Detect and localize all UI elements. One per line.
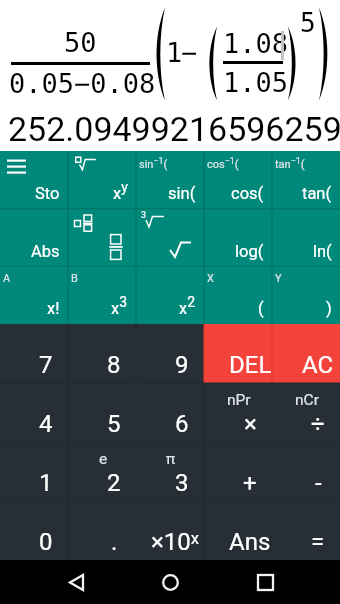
button[interactable]: + <box>204 442 272 501</box>
staticText: 3 <box>141 210 147 221</box>
button[interactable]: ln( <box>272 209 340 267</box>
staticText: + <box>243 469 257 497</box>
staticText: 50 <box>64 27 97 58</box>
staticText: 7 <box>39 351 53 379</box>
button[interactable]: e <box>68 442 136 501</box>
staticText: 5 <box>107 410 121 438</box>
button[interactable]: nPr <box>204 383 272 442</box>
button[interactable]: tan−1( <box>272 151 340 209</box>
button[interactable]: Y <box>272 267 340 324</box>
button[interactable]: ×10x <box>136 501 204 560</box>
staticText: ) <box>326 299 332 318</box>
staticText: 252.09499216596259 <box>8 109 340 149</box>
staticText: 6 <box>175 410 189 438</box>
staticText: ×10x <box>151 528 200 556</box>
button[interactable]: - <box>272 442 340 501</box>
button[interactable]: xy <box>68 151 136 209</box>
staticText: x3 <box>111 294 128 318</box>
button[interactable]: 7 <box>0 324 68 383</box>
button[interactable]: sin−1( <box>136 151 204 209</box>
staticText: x! <box>47 299 60 318</box>
staticText: . <box>111 528 118 556</box>
staticText: nPr <box>227 391 251 409</box>
staticText: e <box>99 450 108 468</box>
button[interactable]: 1 <box>0 442 68 501</box>
staticText: 3 <box>175 469 189 497</box>
staticText: - <box>315 469 322 497</box>
staticText: sin( <box>168 184 196 203</box>
button[interactable]: 3 <box>136 209 204 267</box>
staticText: Ans <box>229 528 271 556</box>
button[interactable]: 6 <box>136 383 204 442</box>
button[interactable]: Back <box>54 560 98 604</box>
button[interactable]: 5 <box>68 383 136 442</box>
button[interactable]: . <box>68 501 136 560</box>
staticText: 0.05−0.08 <box>9 68 156 99</box>
staticText: 1.08 <box>223 28 289 59</box>
staticText: 1 <box>166 37 183 68</box>
button[interactable]: Abs <box>0 209 68 267</box>
staticText: DEL <box>229 351 272 379</box>
staticText: π <box>166 450 176 468</box>
staticText: log( <box>235 242 264 261</box>
button[interactable]: Recents <box>243 560 287 604</box>
staticText: × <box>244 410 257 438</box>
staticText: xy <box>113 179 128 203</box>
button[interactable]: π <box>136 442 204 501</box>
staticText: 8 <box>107 351 121 379</box>
staticText: 1 <box>39 469 53 497</box>
button[interactable]: = <box>272 501 340 560</box>
button[interactable]: 0 <box>0 501 68 560</box>
staticText: x2 <box>179 294 196 318</box>
button[interactable]: Home <box>148 560 192 604</box>
staticText: 1.05 <box>223 67 289 98</box>
staticText: − <box>181 37 198 68</box>
button[interactable]: cos−1( <box>204 151 272 209</box>
staticText: tan( <box>302 184 332 203</box>
staticText: 2 <box>107 469 121 497</box>
button[interactable]: log( <box>204 209 272 267</box>
button[interactable] <box>68 209 136 267</box>
staticText: ln( <box>313 242 332 261</box>
button[interactable]: DEL <box>204 324 272 383</box>
button[interactable]: 9 <box>136 324 204 383</box>
staticText: 4 <box>39 410 53 438</box>
staticText: cos( <box>231 184 264 203</box>
staticText: 0 <box>39 528 53 556</box>
staticText: X <box>207 272 214 285</box>
staticText: AC <box>302 351 334 379</box>
button[interactable]: X <box>204 267 272 324</box>
staticText: sin−1( <box>139 156 168 171</box>
staticText: ( <box>258 299 264 318</box>
staticText: ÷ <box>311 410 325 438</box>
staticText: A <box>3 272 11 285</box>
button[interactable]: B <box>68 267 136 324</box>
button[interactable]: Ans <box>204 501 272 560</box>
staticText: 9 <box>175 351 189 379</box>
staticText: B <box>71 272 78 285</box>
button[interactable]: x2 <box>136 267 204 324</box>
staticText: = <box>311 528 325 556</box>
staticText: 5 <box>300 8 316 38</box>
staticText: nCr <box>295 391 319 409</box>
button[interactable]: nCr <box>272 383 340 442</box>
staticText: tan−1( <box>275 156 305 171</box>
button[interactable]: Sto <box>0 151 68 209</box>
staticText: Sto <box>35 184 60 203</box>
button[interactable]: 4 <box>0 383 68 442</box>
staticText: Y <box>275 272 282 285</box>
staticText: cos−1( <box>207 156 239 171</box>
button[interactable]: AC <box>272 324 340 383</box>
staticText: Abs <box>31 242 60 261</box>
button[interactable]: A <box>0 267 68 324</box>
button[interactable]: 8 <box>68 324 136 383</box>
